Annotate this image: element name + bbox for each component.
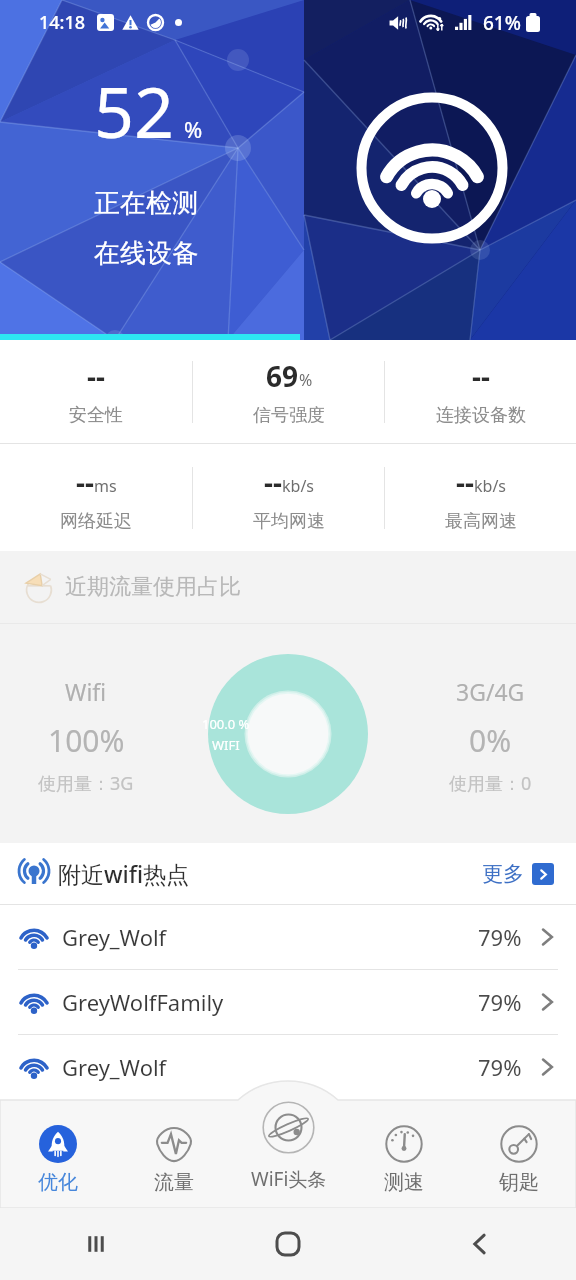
staticText: kb/s	[474, 475, 507, 497]
staticText: 平均网速	[253, 510, 325, 533]
button[interactable]: Grey_Wolf	[0, 905, 576, 969]
button[interactable]: 测速	[346, 1100, 461, 1208]
staticText: 流量	[154, 1170, 194, 1195]
button[interactable]: GreyWolfFamily	[0, 970, 576, 1034]
button[interactable]: Grey_Wolf	[0, 1035, 576, 1099]
staticText: 更多	[482, 861, 524, 887]
staticText: 79%	[478, 1052, 522, 1082]
staticText: --	[472, 357, 490, 395]
staticText: 61%	[483, 10, 521, 36]
staticText: 在线设备	[94, 237, 198, 270]
staticText: 69	[266, 357, 299, 395]
staticText: 网络延迟	[60, 510, 132, 533]
staticText: 安全性	[69, 404, 123, 427]
staticText: %	[184, 114, 203, 144]
staticText: Grey_Wolf	[62, 1052, 167, 1082]
staticText: 100%	[48, 720, 125, 761]
staticText: 100.0 %	[202, 715, 250, 733]
staticText: WiFi头条	[251, 1166, 327, 1192]
staticText: --	[87, 357, 105, 395]
staticText: 信号强度	[253, 404, 325, 427]
staticText: 最高网速	[445, 510, 517, 533]
staticText: WIFI	[212, 736, 240, 754]
staticText: 14:18	[39, 10, 86, 35]
button[interactable]: 优化	[0, 1100, 116, 1208]
staticText: 优化	[38, 1170, 78, 1195]
staticText: 近期流量使用占比	[65, 573, 241, 601]
staticText: 3G/4G	[456, 676, 525, 707]
staticText: 钥匙	[499, 1170, 539, 1195]
staticText: GreyWolfFamily	[62, 987, 224, 1017]
staticText: 测速	[384, 1170, 424, 1195]
staticText: %	[299, 369, 313, 391]
staticText: 79%	[478, 987, 522, 1017]
staticText: ms	[94, 475, 117, 497]
staticText: --	[76, 463, 94, 501]
button[interactable]: Back	[384, 1208, 576, 1280]
button[interactable]: 流量	[116, 1100, 231, 1208]
staticText: Grey_Wolf	[62, 922, 167, 952]
button[interactable]: Home	[192, 1208, 384, 1280]
staticText: 52	[94, 63, 175, 158]
staticText: Wifi	[65, 676, 107, 707]
button[interactable]: WiFi头条	[231, 1100, 346, 1208]
staticText: --	[264, 463, 282, 501]
staticText: 附近wifi热点	[58, 858, 190, 889]
staticText: 连接设备数	[436, 404, 526, 427]
staticText: --	[456, 463, 474, 501]
button[interactable]: 钥匙	[461, 1100, 576, 1208]
button[interactable]: 更多	[478, 857, 558, 891]
staticText: 79%	[478, 922, 522, 952]
staticText: 正在检测	[94, 187, 198, 220]
staticText: 使用量：3G	[38, 771, 134, 796]
button[interactable]: Recent apps	[0, 1208, 192, 1280]
staticText: kb/s	[282, 475, 315, 497]
staticText: 使用量：0	[449, 771, 532, 796]
staticText: 0%	[469, 720, 512, 761]
